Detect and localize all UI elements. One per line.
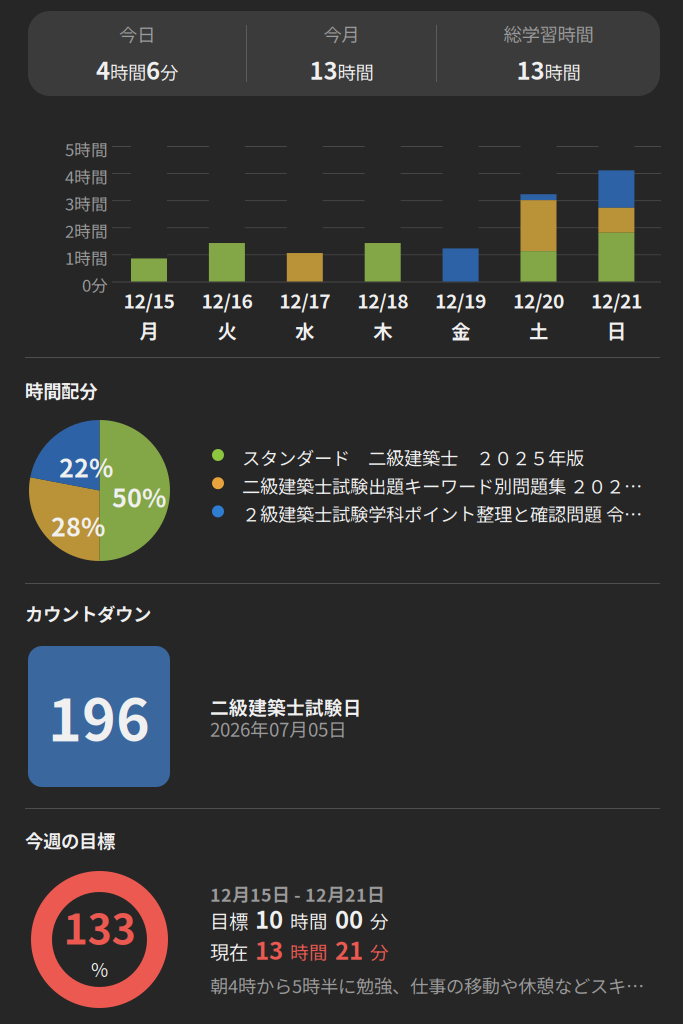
button[interactable]: 196 (28, 646, 658, 787)
staticText: 今日 (119, 20, 155, 47)
button[interactable]: 今日 (28, 11, 660, 96)
staticText: 分 (370, 938, 389, 965)
staticText: 2時間 (65, 218, 108, 242)
staticText: 土 (529, 316, 548, 344)
staticText: 133 (63, 897, 135, 956)
staticText: 二級建築士試験出題キーワード別問題集 ２０２３… (242, 472, 654, 499)
staticText: 12/18 (357, 286, 408, 314)
staticText: 21 (335, 932, 363, 967)
staticText: 時間 (290, 907, 328, 934)
staticText: 12/20 (513, 286, 564, 314)
staticText: 木 (373, 316, 392, 344)
staticText: 今月 (323, 20, 359, 47)
staticText: 00 (335, 901, 363, 936)
staticText: 時間 (337, 58, 373, 85)
staticText: 時間配分 (25, 377, 97, 404)
staticText: 12/15 (123, 286, 174, 314)
staticText: 12/19 (435, 286, 486, 314)
staticText: 時間 (544, 58, 580, 85)
staticText: 4 (96, 52, 110, 87)
button[interactable]: 133 (31, 871, 671, 1008)
staticText: 分 (160, 58, 178, 85)
staticText: 日 (607, 316, 626, 344)
staticText: 0分 (82, 272, 108, 297)
staticText: 金 (451, 316, 470, 344)
staticText: 二級建築士試験日 (210, 693, 362, 720)
staticText: 時間 (290, 938, 328, 965)
staticText: 総学習時間 (503, 20, 593, 47)
staticText: 22% (59, 448, 113, 485)
staticText: カウントダウン (25, 600, 151, 627)
staticText: ２級建築士試験学科ポイント整理と確認問題 令和… (242, 500, 654, 527)
staticText: 今週の目標 (25, 827, 115, 854)
staticText: 水 (295, 316, 314, 344)
staticText: 13 (255, 932, 283, 967)
staticText: 2026年07月05日 (210, 715, 347, 742)
staticText: 13 (309, 52, 337, 87)
staticText: 分 (370, 907, 389, 934)
staticText: スタンダード 二級建築士 ２０２５年版 (242, 444, 584, 470)
staticText: 月 (139, 316, 158, 344)
staticText: 現在 (210, 937, 248, 965)
staticText: 5時間 (65, 137, 108, 161)
staticText: 12/21 (591, 286, 642, 314)
staticText: 196 (48, 675, 150, 758)
staticText: 火 (217, 316, 236, 344)
staticText: 朝4時から5時半に勉強、仕事の移動や休憩などスキマ… (210, 972, 656, 998)
staticText: 3時間 (65, 191, 108, 215)
staticText: 1時間 (65, 245, 108, 269)
staticText: 28% (51, 507, 105, 544)
staticText: % (91, 955, 108, 982)
staticText: 時間 (110, 58, 146, 85)
staticText: 50% (112, 478, 166, 515)
staticText: 目標 (210, 906, 248, 934)
staticText: 10 (255, 901, 283, 936)
staticText: 12/16 (201, 286, 252, 314)
staticText: 13 (516, 52, 544, 87)
staticText: 6 (146, 52, 160, 87)
staticText: 12/17 (279, 286, 330, 314)
staticText: 4時間 (65, 164, 108, 188)
staticText: 12月15日 - 12月21日 (210, 881, 385, 907)
